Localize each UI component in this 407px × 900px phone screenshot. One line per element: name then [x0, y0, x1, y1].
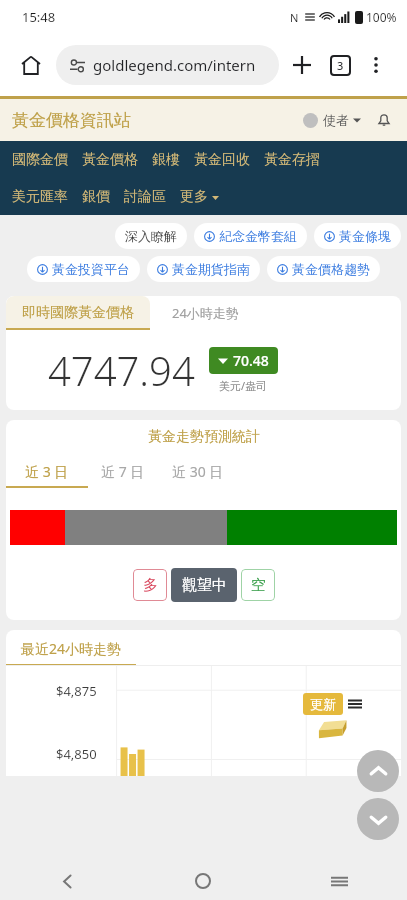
- button[interactable]: Menu: [347, 696, 363, 712]
- button[interactable]: 黃金價格趨勢: [267, 256, 380, 282]
- button[interactable]: 黃金期貨指南: [147, 256, 260, 282]
- staticText: 15:48: [22, 8, 56, 26]
- staticText: 黃金回收: [194, 151, 250, 169]
- staticText: 黃金價格趨勢: [292, 261, 370, 277]
- staticText: 黃金存摺: [264, 151, 320, 169]
- staticText: 3: [337, 58, 344, 73]
- button[interactable]: Tabs: [323, 48, 357, 82]
- staticText: 近 30 日: [172, 462, 224, 481]
- staticText: 黃金投資平台: [52, 261, 130, 277]
- staticText: 即時國際黃金價格: [22, 304, 134, 322]
- button[interactable]: New tab: [285, 48, 319, 82]
- staticText: 銀價: [82, 188, 110, 206]
- button[interactable]: Scroll down: [357, 798, 399, 840]
- button[interactable]: Home: [14, 48, 48, 82]
- button[interactable]: Home: [135, 862, 271, 900]
- button[interactable]: 空: [241, 569, 275, 601]
- button[interactable]: 黃金投資平台: [27, 256, 140, 282]
- staticText: 多: [143, 576, 158, 595]
- button[interactable]: 更新: [303, 693, 343, 715]
- staticText: 近 3 日: [25, 462, 69, 481]
- button[interactable]: Scroll up: [357, 750, 399, 792]
- button[interactable]: 國際金價: [12, 151, 82, 169]
- button[interactable]: 近 7 日: [88, 454, 158, 488]
- staticText: 70.48: [233, 351, 269, 370]
- staticText: 國際金價: [12, 151, 68, 169]
- staticText: 近 7 日: [101, 462, 145, 481]
- button[interactable]: 銀價: [82, 188, 124, 206]
- staticText: 討論區: [124, 188, 166, 206]
- staticText: 深入瞭解: [125, 228, 177, 244]
- staticText: 觀望中: [182, 576, 227, 595]
- staticText: 使者: [323, 112, 349, 128]
- button[interactable]: Notifications: [371, 107, 397, 133]
- staticText: 4747.94: [48, 343, 195, 397]
- button[interactable]: 紀念金幣套組: [194, 223, 307, 249]
- button[interactable]: 最近24小時走勢: [6, 630, 136, 666]
- staticText: $4,875: [56, 682, 97, 700]
- button[interactable]: 即時國際黃金價格: [6, 296, 150, 330]
- button[interactable]: 近 30 日: [158, 454, 238, 488]
- staticText: 24小時走勢: [172, 304, 239, 322]
- button[interactable]: 多: [133, 569, 167, 601]
- staticText: 100%: [366, 9, 397, 25]
- staticText: 黃金走勢預測統計: [148, 428, 260, 446]
- staticText: 更新: [310, 696, 336, 712]
- button[interactable]: Back: [0, 862, 135, 900]
- button[interactable]: 黃金條塊: [314, 223, 401, 249]
- button[interactable]: Recent apps: [271, 862, 407, 900]
- button[interactable]: 黃金回收: [194, 151, 264, 169]
- button[interactable]: 黃金價格: [82, 151, 152, 169]
- button[interactable]: 深入瞭解: [115, 223, 187, 249]
- staticText: 空: [251, 576, 266, 595]
- button[interactable]: 黃金存摺: [264, 151, 334, 169]
- staticText: 最近24小時走勢: [21, 639, 122, 658]
- button[interactable]: 銀樓: [152, 151, 194, 169]
- staticText: 黃金價格: [82, 151, 138, 169]
- staticText: 紀念金幣套組: [219, 228, 297, 244]
- button[interactable]: 更多: [180, 188, 229, 206]
- button[interactable]: More options: [359, 48, 393, 82]
- staticText: 美元/盎司: [219, 378, 268, 393]
- staticText: 黃金價格資訊站: [12, 110, 131, 131]
- staticText: 黃金期貨指南: [172, 261, 250, 277]
- staticText: $4,850: [56, 745, 97, 763]
- staticText: 美元匯率: [12, 188, 68, 206]
- button[interactable]: 美元匯率: [12, 188, 82, 206]
- staticText: 更多: [180, 188, 208, 206]
- button[interactable]: 觀望中: [171, 568, 237, 602]
- staticText: 銀樓: [152, 151, 180, 169]
- button[interactable]: 討論區: [124, 188, 180, 206]
- button[interactable]: 近 3 日: [6, 454, 88, 488]
- staticText: goldlegend.com/intern: [93, 55, 256, 75]
- staticText: N: [290, 10, 299, 25]
- staticText: 黃金條塊: [339, 228, 391, 244]
- button[interactable]: 使者: [299, 108, 365, 132]
- button[interactable]: goldlegend.com/intern: [56, 45, 279, 85]
- button[interactable]: 24小時走勢: [150, 296, 401, 330]
